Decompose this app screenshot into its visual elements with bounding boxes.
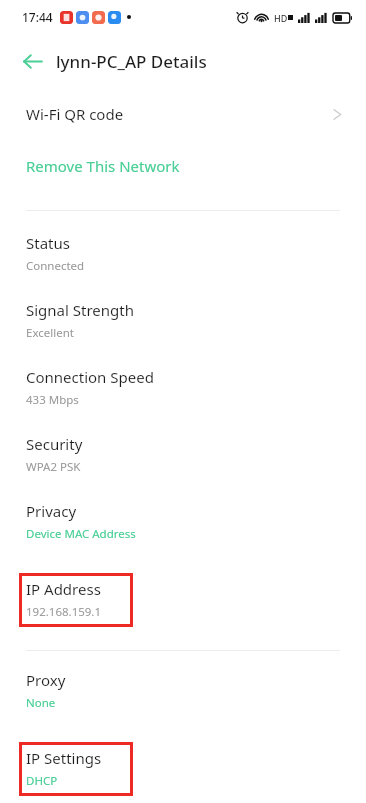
staticText: 17:44 bbox=[22, 9, 53, 25]
staticText: HD bbox=[274, 12, 288, 24]
button[interactable]: Privacy bbox=[0, 501, 366, 568]
staticText: Wi-Fi QR code bbox=[26, 104, 329, 124]
staticText: Proxy bbox=[26, 670, 66, 690]
button[interactable]: Back bbox=[12, 41, 52, 81]
staticText: Device MAC Address bbox=[26, 526, 136, 542]
staticText: 433 Mbps bbox=[26, 392, 79, 408]
button[interactable]: Signal Strength bbox=[0, 300, 366, 367]
staticText: None bbox=[26, 695, 56, 711]
button[interactable]: Proxy bbox=[0, 670, 366, 737]
staticText: Signal Strength bbox=[26, 300, 134, 320]
staticText: WPA2 PSK bbox=[26, 459, 81, 475]
button[interactable]: Status bbox=[0, 233, 366, 300]
staticText: Excellent bbox=[26, 325, 74, 341]
staticText: IP Settings bbox=[26, 748, 102, 768]
staticText: Connection Speed bbox=[26, 367, 154, 387]
staticText: lynn-PC_AP Details bbox=[56, 50, 207, 73]
staticText: Connected bbox=[26, 258, 85, 274]
button[interactable]: Security bbox=[0, 434, 366, 501]
staticText: DHCP bbox=[26, 773, 58, 789]
staticText: Privacy bbox=[26, 501, 77, 521]
staticText: 192.168.159.1 bbox=[26, 604, 102, 620]
button[interactable]: Connection Speed bbox=[0, 367, 366, 434]
staticText: Remove This Network bbox=[26, 156, 180, 176]
staticText: Status bbox=[26, 233, 70, 253]
button[interactable]: IP Settings bbox=[0, 737, 366, 803]
button[interactable]: Wi-Fi QR code bbox=[0, 88, 366, 140]
staticText: IP Address bbox=[26, 579, 101, 599]
button[interactable]: Remove This Network bbox=[0, 140, 366, 192]
staticText: Security bbox=[26, 434, 83, 454]
button[interactable]: IP Address bbox=[0, 568, 366, 635]
